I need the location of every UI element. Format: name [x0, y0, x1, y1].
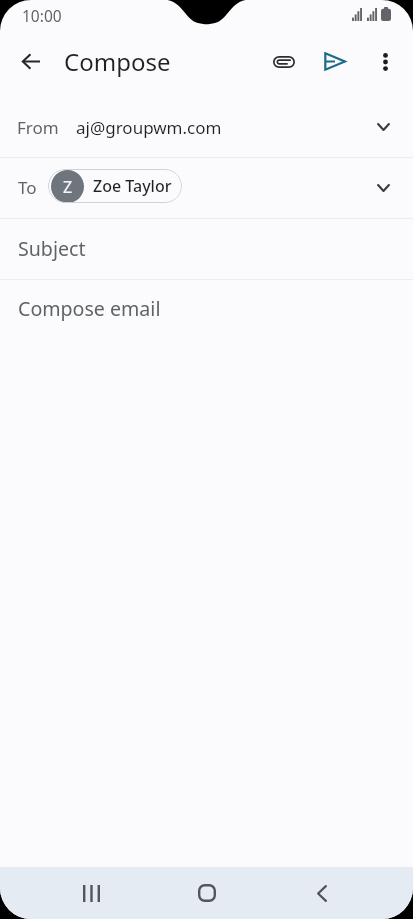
- button[interactable]: Home: [171, 867, 243, 919]
- staticText: Z: [63, 176, 73, 198]
- button[interactable]: Expand recipients: [361, 166, 405, 210]
- staticText: From: [17, 116, 59, 139]
- button[interactable]: Recent apps: [55, 867, 127, 919]
- button[interactable]: Attach file: [261, 39, 306, 84]
- button[interactable]: Back: [286, 867, 358, 919]
- staticText: 10:00: [22, 5, 62, 26]
- staticText: Compose email: [18, 295, 161, 322]
- staticText: Compose: [64, 45, 171, 78]
- button[interactable]: Back: [8, 39, 53, 84]
- button[interactable]: Expand sender options: [361, 105, 405, 149]
- button[interactable]: Send: [312, 39, 357, 84]
- staticText: To: [18, 176, 37, 199]
- staticText: aj@groupwm.com: [76, 116, 222, 139]
- button[interactable]: Z: [48, 169, 172, 203]
- button[interactable]: More options: [363, 39, 408, 84]
- button[interactable]: From: [0, 89, 413, 157]
- button[interactable]: To: [0, 158, 413, 218]
- staticText: Subject: [18, 235, 86, 262]
- staticText: Zoe Taylor: [93, 175, 172, 197]
- button[interactable]: Compose email: [0, 280, 413, 338]
- button[interactable]: Subject: [0, 219, 413, 279]
